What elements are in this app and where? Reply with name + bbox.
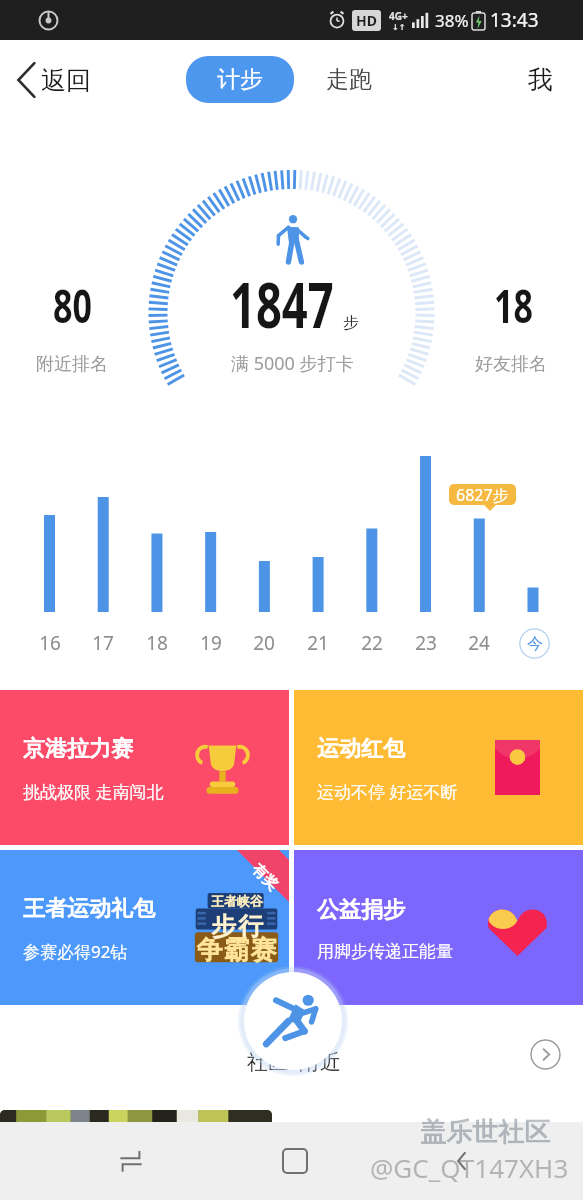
staticText: 步行 [210, 911, 264, 942]
staticText: 18 [146, 630, 168, 656]
staticText: 挑战极限 走南闯北 [23, 780, 164, 803]
staticText: 80 [53, 274, 92, 337]
staticText: 18 [494, 274, 533, 337]
staticText: 38% [435, 9, 469, 32]
staticText: 1847 [230, 262, 334, 346]
staticText: 22 [361, 630, 383, 656]
button[interactable]: 计步 [186, 56, 294, 103]
staticText: 13:43 [490, 7, 539, 33]
staticText: 好友排名 [475, 353, 547, 376]
staticText: 王者峡谷 [211, 893, 263, 909]
button[interactable]: Home [282, 1148, 308, 1174]
staticText: 附近排名 [36, 353, 108, 376]
staticText: 16 [39, 630, 61, 656]
staticText: 王者运动礼包 [23, 895, 155, 923]
staticText: 我 [528, 64, 553, 95]
button[interactable]: More [530, 1039, 561, 1070]
staticText: 盖乐世社区 [420, 1116, 550, 1149]
staticText: 京港拉力赛 [23, 735, 133, 763]
button[interactable]: 我 [498, 54, 583, 105]
button[interactable]: Back [450, 1149, 474, 1173]
button[interactable]: 王者运动礼包 [0, 850, 289, 1005]
staticText: 19 [200, 630, 222, 656]
staticText: 23 [415, 630, 437, 656]
staticText: HD [356, 11, 377, 30]
staticText: 参赛必得92钻 [23, 940, 128, 963]
staticText: 用脚步传递正能量 [317, 941, 453, 962]
staticText: 21 [307, 630, 329, 656]
staticText: 有奖 [248, 860, 282, 895]
staticText: 运动红包 [317, 735, 405, 763]
button[interactable]: 今 [519, 628, 550, 659]
staticText: 17 [92, 630, 114, 656]
staticText: 公益捐步 [317, 896, 405, 924]
button[interactable]: 社区 [247, 1049, 289, 1075]
button[interactable]: 公益捐步 [294, 850, 583, 1005]
staticText: 争霸赛 [196, 934, 277, 967]
button[interactable]: Start run [244, 972, 342, 1070]
staticText: 计步 [217, 65, 263, 94]
staticText: 附近 [299, 1049, 341, 1075]
staticText: 24 [468, 630, 490, 656]
staticText: 今 [527, 634, 543, 654]
staticText: 运动不停 好运不断 [317, 780, 458, 803]
button[interactable]: 运动红包 [294, 690, 583, 845]
button[interactable] [0, 1110, 272, 1122]
button[interactable]: 京港拉力赛 [0, 690, 289, 845]
staticText: 20 [253, 630, 275, 656]
button[interactable]: Recent apps [117, 1147, 145, 1175]
staticText: @GC_QT147XH3 [370, 1150, 569, 1185]
staticText: 走跑 [326, 65, 372, 94]
button[interactable]: 附近 [299, 1049, 341, 1075]
staticText: ↓↑ [392, 23, 406, 32]
button[interactable]: 返回 [0, 62, 99, 98]
staticText: 6827步 [456, 484, 509, 505]
staticText: 步 [343, 313, 359, 333]
staticText: 返回 [41, 65, 91, 96]
staticText: 4G+ [389, 9, 408, 23]
staticText: 社区 [247, 1049, 289, 1075]
button[interactable]: 走跑 [316, 57, 382, 102]
staticText: 满 5000 步打卡 [231, 351, 354, 376]
